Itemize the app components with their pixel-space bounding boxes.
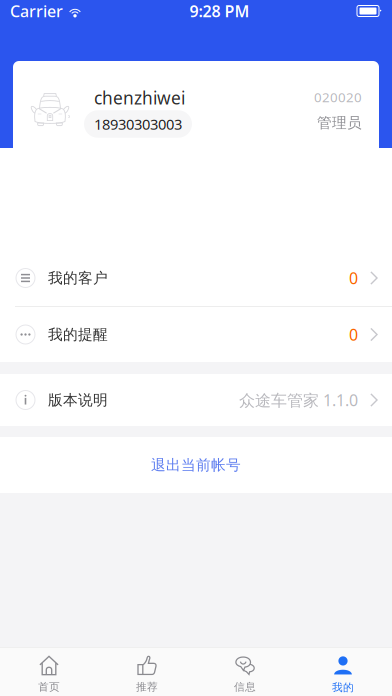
staticText: 信息 bbox=[234, 680, 256, 693]
staticText: 推荐 bbox=[136, 680, 158, 693]
staticText: 0 bbox=[349, 324, 358, 345]
staticText: 我的客户 bbox=[48, 269, 108, 287]
staticText: 18930303003 bbox=[94, 114, 182, 134]
button[interactable]: 首页 bbox=[0, 647, 98, 696]
staticText: 首页 bbox=[38, 680, 60, 693]
button[interactable]: 退出当前帐号 bbox=[0, 437, 392, 493]
staticText: 版本说明 bbox=[48, 391, 108, 409]
staticText: 020020 bbox=[314, 88, 362, 106]
staticText: Carrier bbox=[10, 0, 63, 22]
staticText: chenzhiwei bbox=[94, 86, 185, 109]
staticText: 0 bbox=[349, 267, 358, 289]
staticText: 9:28 PM bbox=[189, 0, 249, 22]
button[interactable]: 版本说明 bbox=[0, 374, 392, 426]
button[interactable]: 推荐 bbox=[98, 647, 196, 696]
staticText: 众途车管家 1.1.0 bbox=[239, 389, 358, 411]
staticText: 我的提醒 bbox=[48, 325, 108, 343]
button[interactable]: 我的提醒 bbox=[0, 307, 392, 362]
staticText: 退出当前帐号 bbox=[151, 456, 241, 474]
button[interactable]: 信息 bbox=[196, 647, 294, 696]
button[interactable]: 我的客户 bbox=[0, 250, 392, 306]
staticText: 管理员 bbox=[317, 114, 362, 132]
staticText: 我的 bbox=[332, 681, 354, 694]
button[interactable]: 我的 bbox=[294, 647, 392, 696]
